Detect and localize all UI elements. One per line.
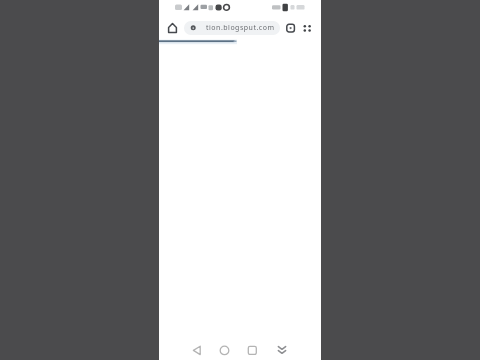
staticText: tion.blogsput.com — [206, 23, 275, 33]
button[interactable] — [272, 340, 292, 360]
button[interactable] — [165, 20, 180, 36]
button[interactable]: tion.blogsput.com — [184, 21, 280, 35]
button[interactable] — [300, 21, 315, 35]
button[interactable] — [242, 340, 262, 360]
button[interactable] — [214, 340, 234, 360]
button[interactable] — [187, 340, 207, 360]
button[interactable] — [284, 21, 297, 35]
